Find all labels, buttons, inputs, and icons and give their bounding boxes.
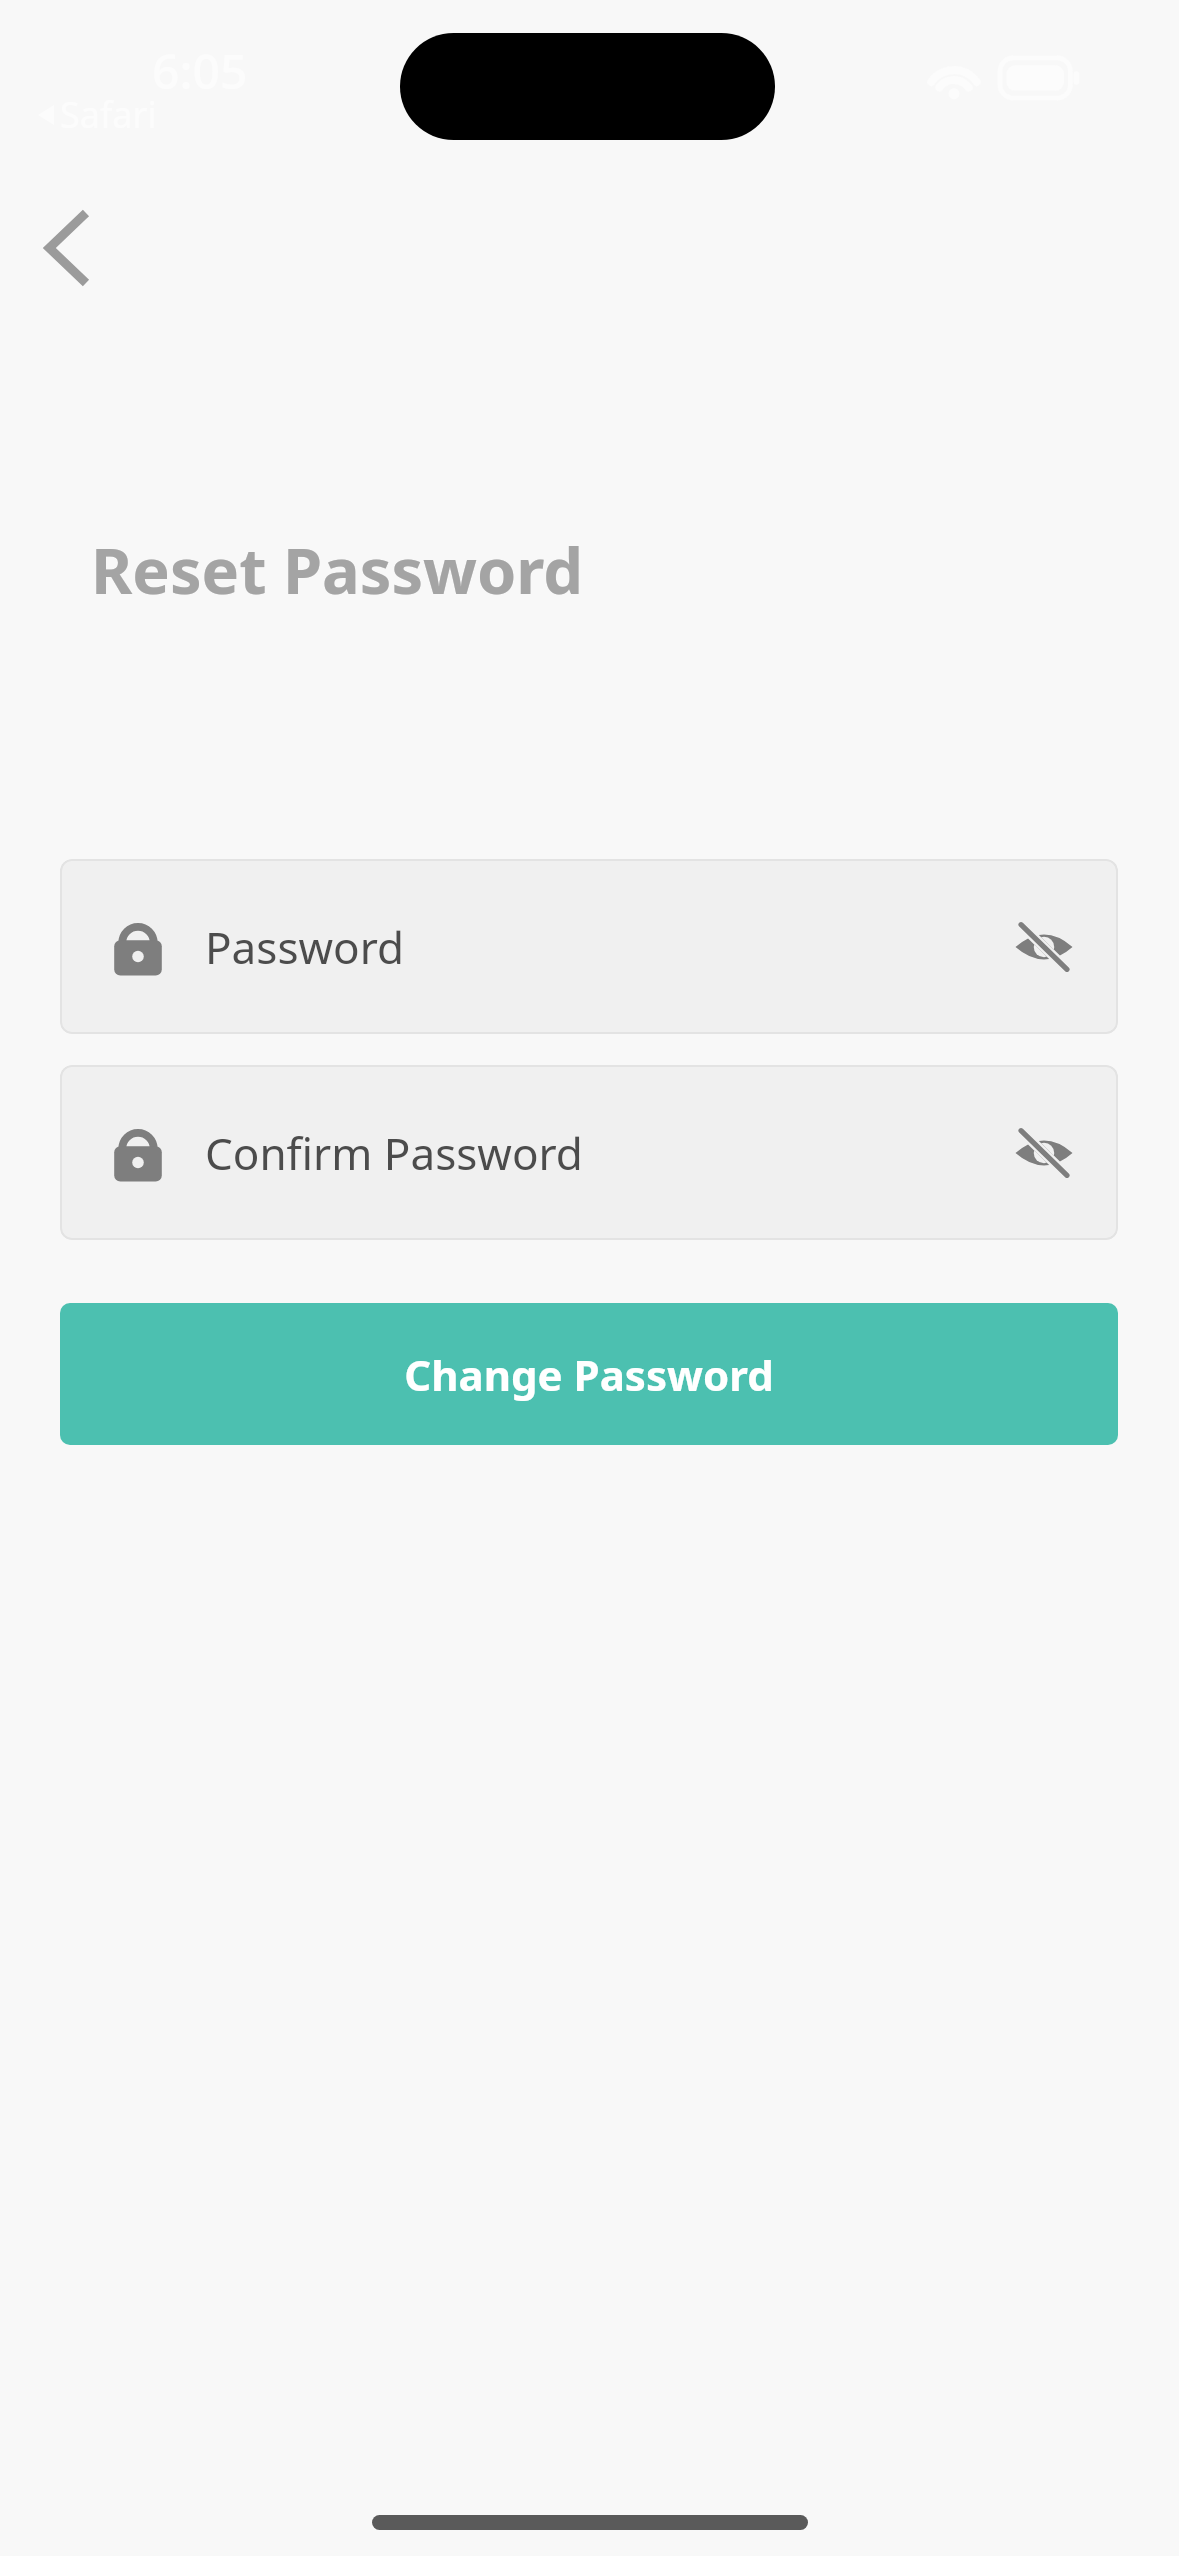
button[interactable]: Confirm Password	[60, 1065, 1118, 1240]
button[interactable]: Show password	[996, 899, 1092, 995]
staticText: Confirm Password	[205, 1123, 583, 1183]
staticText: Reset Password	[91, 527, 584, 613]
staticText: Password	[205, 917, 405, 977]
button[interactable]: Password	[60, 859, 1118, 1034]
button[interactable]: Back	[14, 196, 118, 300]
staticText: Change Password	[404, 1346, 774, 1403]
button[interactable]: Show confirm password	[996, 1105, 1092, 1201]
button[interactable]: Change Password	[60, 1303, 1118, 1445]
